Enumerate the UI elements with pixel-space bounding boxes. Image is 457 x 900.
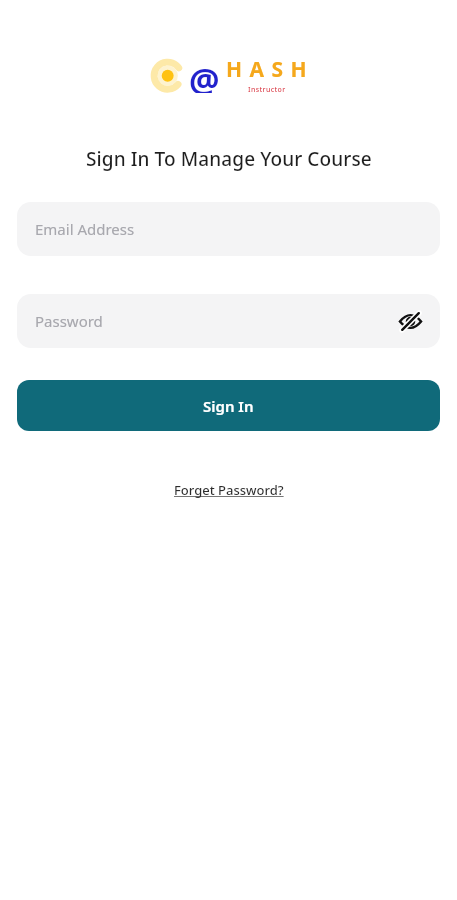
staticText: Forget Password?	[174, 481, 284, 499]
staticText: Email Address	[35, 219, 135, 239]
staticText: Instructor	[248, 85, 286, 95]
button[interactable]: Forget Password?	[164, 476, 294, 504]
button[interactable]: Sign In	[17, 380, 440, 431]
staticText: H A S H	[226, 55, 308, 84]
staticText: Password	[35, 311, 103, 331]
staticText: Sign In To Manage Your Course	[86, 146, 372, 172]
button[interactable]: Email Address	[17, 202, 440, 256]
button[interactable]: Show password	[390, 301, 430, 341]
staticText: @	[189, 57, 220, 93]
staticText: Sign In	[203, 396, 254, 416]
button[interactable]: Password	[17, 294, 440, 348]
